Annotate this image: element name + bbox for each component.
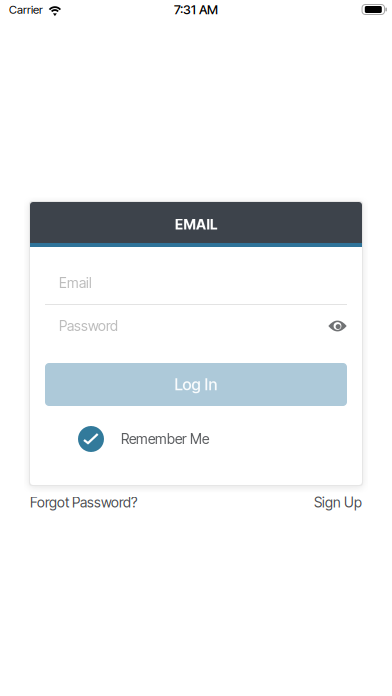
button[interactable]: Sign Up	[314, 494, 362, 511]
staticText: Remember Me	[121, 430, 209, 447]
staticText: 7:31 AM	[174, 2, 218, 17]
staticText: EMAIL	[175, 216, 217, 233]
staticText: Password	[59, 317, 118, 334]
staticText: Carrier	[9, 3, 43, 16]
staticText: Forgot Password?	[30, 494, 137, 511]
button[interactable]: Show password	[328, 313, 347, 339]
button[interactable]: Remember Me	[78, 426, 209, 452]
button[interactable]: Log In	[45, 363, 347, 406]
staticText: Sign Up	[314, 494, 362, 511]
button[interactable]: Forgot Password?	[30, 494, 137, 511]
staticText: Log In	[174, 375, 217, 394]
staticText: Email	[59, 274, 92, 291]
